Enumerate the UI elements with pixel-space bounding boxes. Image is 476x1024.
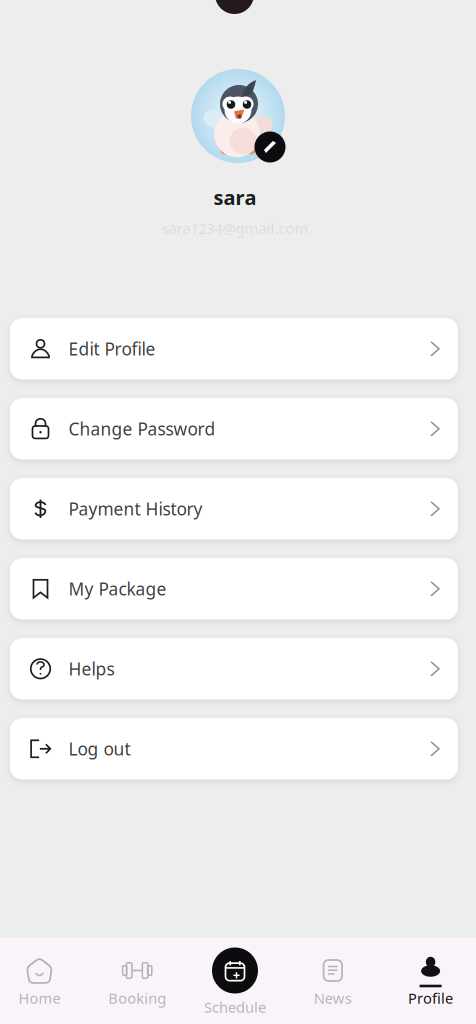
staticText: Schedule xyxy=(204,997,266,1017)
button[interactable]: News xyxy=(284,938,382,1024)
button[interactable]: Log out xyxy=(10,718,458,779)
button[interactable]: Edit profile photo xyxy=(254,131,285,162)
button[interactable]: My Package xyxy=(10,558,458,619)
staticText: Helps xyxy=(68,657,114,680)
staticText: Profile xyxy=(408,988,453,1008)
staticText: News xyxy=(314,988,352,1008)
button[interactable]: Schedule xyxy=(186,938,284,1024)
staticText: Log out xyxy=(68,737,130,760)
staticText: Booking xyxy=(108,988,166,1008)
staticText: sara1234@gmail.com xyxy=(161,219,308,238)
staticText: Home xyxy=(18,988,60,1008)
button[interactable]: Profile xyxy=(382,938,476,1024)
button[interactable]: Helps xyxy=(10,638,458,699)
staticText: sara xyxy=(213,184,256,211)
button[interactable]: Home xyxy=(0,938,88,1024)
staticText: Change Password xyxy=(68,417,215,440)
staticText: Payment History xyxy=(68,497,202,520)
button[interactable]: Change Password xyxy=(10,398,458,459)
staticText: Edit Profile xyxy=(68,337,155,360)
button[interactable]: Payment History xyxy=(10,478,458,539)
button[interactable]: Edit Profile xyxy=(10,318,458,379)
staticText: My Package xyxy=(68,577,166,600)
button[interactable]: Booking xyxy=(88,938,186,1024)
